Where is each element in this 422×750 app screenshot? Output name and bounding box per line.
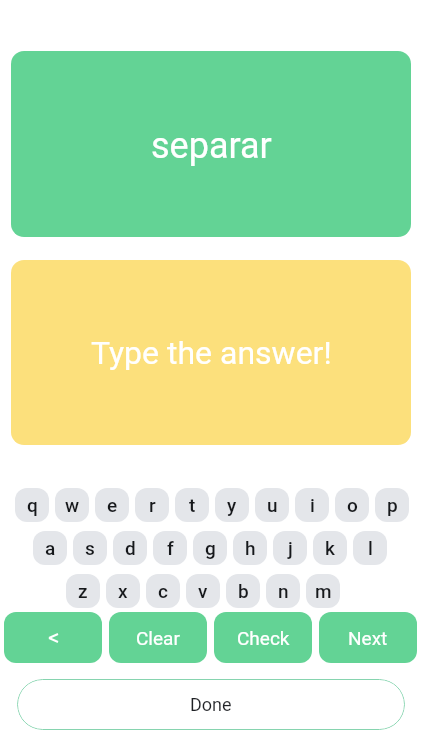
- staticText: e: [107, 494, 118, 516]
- button[interactable]: Next: [319, 612, 417, 663]
- button[interactable]: Check: [214, 612, 312, 663]
- button[interactable]: f: [153, 531, 187, 565]
- staticText: z: [78, 580, 88, 602]
- staticText: x: [118, 580, 128, 602]
- button[interactable]: v: [186, 574, 220, 608]
- staticText: f: [167, 537, 174, 559]
- button[interactable]: u: [255, 488, 289, 522]
- staticText: a: [45, 537, 56, 559]
- staticText: o: [347, 494, 358, 516]
- staticText: j: [288, 537, 293, 559]
- staticText: Clear: [136, 627, 180, 649]
- staticText: u: [267, 494, 278, 516]
- button[interactable]: r: [135, 488, 169, 522]
- staticText: v: [198, 580, 208, 602]
- staticText: l: [368, 537, 373, 559]
- button[interactable]: Clear: [109, 612, 207, 663]
- staticText: Check: [237, 627, 290, 649]
- button[interactable]: y: [215, 488, 249, 522]
- button[interactable]: m: [306, 574, 340, 608]
- button[interactable]: w: [55, 488, 89, 522]
- button[interactable]: e: [95, 488, 129, 522]
- staticText: p: [387, 494, 398, 516]
- staticText: s: [85, 537, 95, 559]
- button[interactable]: h: [233, 531, 267, 565]
- staticText: d: [125, 537, 136, 559]
- staticText: r: [149, 494, 156, 516]
- button[interactable]: o: [335, 488, 369, 522]
- button[interactable]: q: [15, 488, 49, 522]
- staticText: h: [245, 537, 256, 559]
- staticText: Done: [190, 694, 232, 715]
- staticText: Type the answer!: [91, 334, 332, 372]
- staticText: g: [205, 537, 216, 559]
- staticText: separar: [151, 125, 272, 167]
- staticText: c: [158, 580, 168, 602]
- button[interactable]: z: [66, 574, 100, 608]
- button[interactable]: k: [313, 531, 347, 565]
- staticText: m: [315, 580, 332, 602]
- button[interactable]: c: [146, 574, 180, 608]
- button[interactable]: a: [33, 531, 67, 565]
- staticText: t: [189, 494, 196, 516]
- staticText: w: [65, 494, 80, 516]
- button[interactable]: Done: [17, 679, 405, 730]
- button[interactable]: j: [273, 531, 307, 565]
- button[interactable]: p: [375, 488, 409, 522]
- staticText: Next: [348, 627, 388, 649]
- staticText: b: [238, 580, 249, 602]
- button[interactable]: separar: [11, 51, 411, 237]
- staticText: q: [27, 494, 38, 516]
- button[interactable]: i: [295, 488, 329, 522]
- button[interactable]: Back: [4, 612, 102, 663]
- staticText: i: [310, 494, 315, 516]
- button[interactable]: s: [73, 531, 107, 565]
- button[interactable]: Type the answer!: [11, 260, 411, 445]
- button[interactable]: b: [226, 574, 260, 608]
- button[interactable]: g: [193, 531, 227, 565]
- staticText: k: [325, 537, 335, 559]
- button[interactable]: l: [353, 531, 387, 565]
- button[interactable]: d: [113, 531, 147, 565]
- button[interactable]: x: [106, 574, 140, 608]
- staticText: y: [227, 494, 237, 516]
- button[interactable]: n: [266, 574, 300, 608]
- button[interactable]: t: [175, 488, 209, 522]
- staticText: n: [278, 580, 289, 602]
